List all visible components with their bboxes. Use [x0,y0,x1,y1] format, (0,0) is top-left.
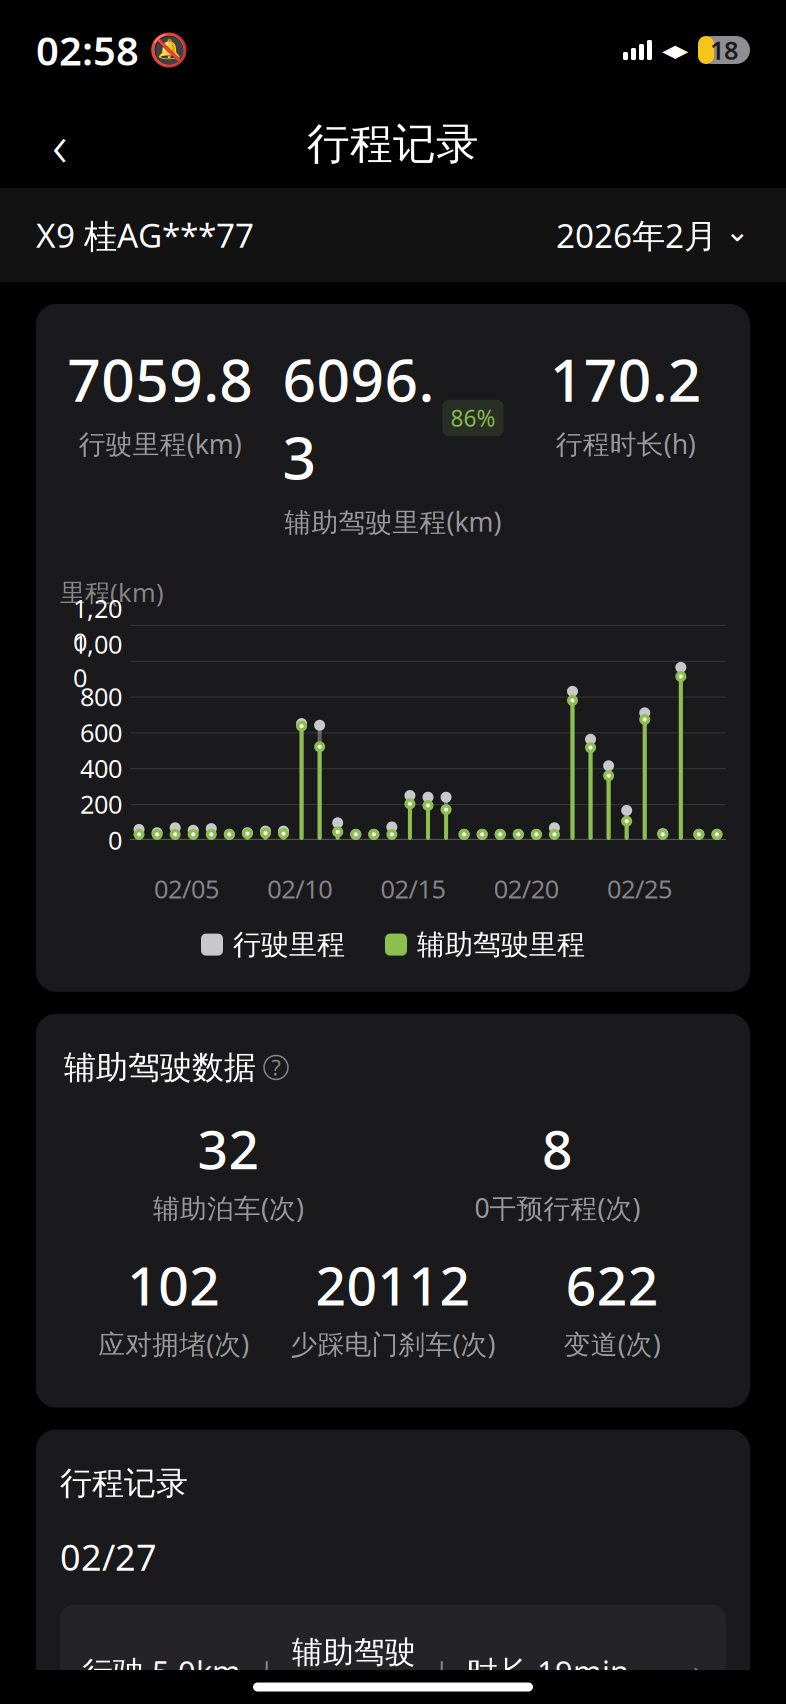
staticText: 时长 19min [467,1651,629,1692]
staticText: 18 [710,33,738,67]
staticText: 102 [127,1249,220,1320]
staticText: 辅助驾驶 0.0km [292,1631,416,1704]
staticText: 622 [566,1249,659,1320]
staticText: 6096.3 [282,340,434,496]
staticText: › [693,1645,704,1698]
staticText: 辅助驾驶数据 [64,1048,256,1087]
staticText: 02/10 [267,872,332,905]
staticText: ⌄ [725,214,750,248]
staticText: 02/05 [154,872,219,905]
staticText: 20112 [315,1249,470,1320]
staticText: | [434,1653,449,1690]
staticText: 行程时长(h) [556,426,696,461]
staticText: 86% [450,403,495,433]
staticText: 800 [80,680,122,713]
staticText: ◂▸ [662,35,688,65]
staticText: 02/25 [607,872,672,905]
staticText: 1,200 [73,591,122,658]
staticText: 辅助驾驶里程 [417,927,585,962]
button[interactable]: 2026年2月 [556,213,750,257]
staticText: 200 [80,787,122,821]
staticText: 32 [197,1113,259,1184]
staticText: X9 桂AG***77 [36,213,254,257]
staticText: 400 [80,751,122,785]
staticText: 1,000 [73,627,122,694]
staticText: ‹ [52,105,68,183]
staticText: 行程记录 [60,1464,188,1503]
staticText: 8 [542,1113,573,1184]
staticText: 600 [80,715,122,749]
staticText: 7059.8 [67,340,253,418]
staticText: 🔕 [149,32,189,68]
staticText: 应对拥堵(次) [98,1326,249,1362]
staticText: 辅助泊车(次) [153,1190,304,1225]
staticText: 0干预行程(次) [474,1190,640,1225]
staticText: 行驶里程 [233,927,345,962]
staticText: 02/27 [60,1533,157,1581]
staticText: 02/15 [380,872,445,905]
staticText: 02/20 [494,872,559,905]
staticText: ? [271,1053,280,1082]
staticText: 行驶 5.0km [82,1651,241,1692]
staticText: 辅助驾驶里程(km) [284,504,501,539]
staticText: 170.2 [550,340,702,418]
staticText: 02:58 [36,23,139,76]
staticText: 少踩电门刹车(次) [290,1326,495,1362]
button[interactable]: 返回 [30,114,90,174]
staticText: 2026年2月 [556,213,717,257]
staticText: 行程记录 [307,118,479,170]
button[interactable]: 行驶 5.0km [60,1605,726,1704]
staticText: | [259,1653,274,1690]
button[interactable]: 辅助驾驶数据 [64,1048,288,1087]
staticText: 行驶里程(km) [79,426,242,461]
staticText: 0 [108,823,122,857]
staticText: 变道(次) [564,1326,661,1362]
staticText: 里程(km) [60,575,164,609]
